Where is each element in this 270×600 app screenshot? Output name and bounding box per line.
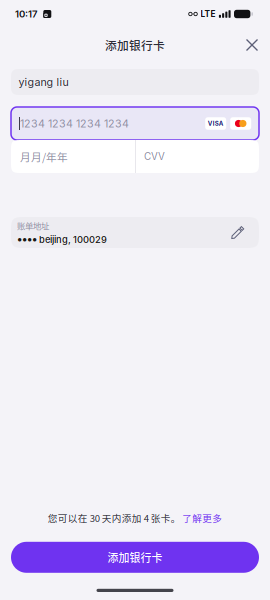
staticText: 添加银行卡 — [107, 549, 162, 565]
staticText: 了解更多 — [182, 511, 222, 525]
staticText: CVV — [144, 150, 165, 162]
staticText: •••• beijing, 100029 — [17, 232, 107, 245]
staticText: VISA — [208, 120, 224, 127]
staticText: 1234 1234 1234 1234 — [20, 117, 129, 130]
staticText: 10:17 — [15, 8, 38, 20]
staticText: 账单地址 — [17, 220, 49, 232]
staticText: yigang liu — [18, 75, 68, 88]
button[interactable]: Close — [239, 32, 265, 58]
staticText: 您可以在 30 天内添加 4 张卡。 — [48, 511, 181, 525]
staticText: LTE — [200, 9, 215, 19]
button[interactable]: 添加银行卡 — [11, 542, 259, 573]
button[interactable]: 了解更多 — [182, 511, 222, 525]
button[interactable]: 账单地址 — [11, 217, 259, 248]
staticText: 月月/年年 — [20, 149, 68, 164]
staticText: 添加银行卡 — [105, 36, 165, 53]
